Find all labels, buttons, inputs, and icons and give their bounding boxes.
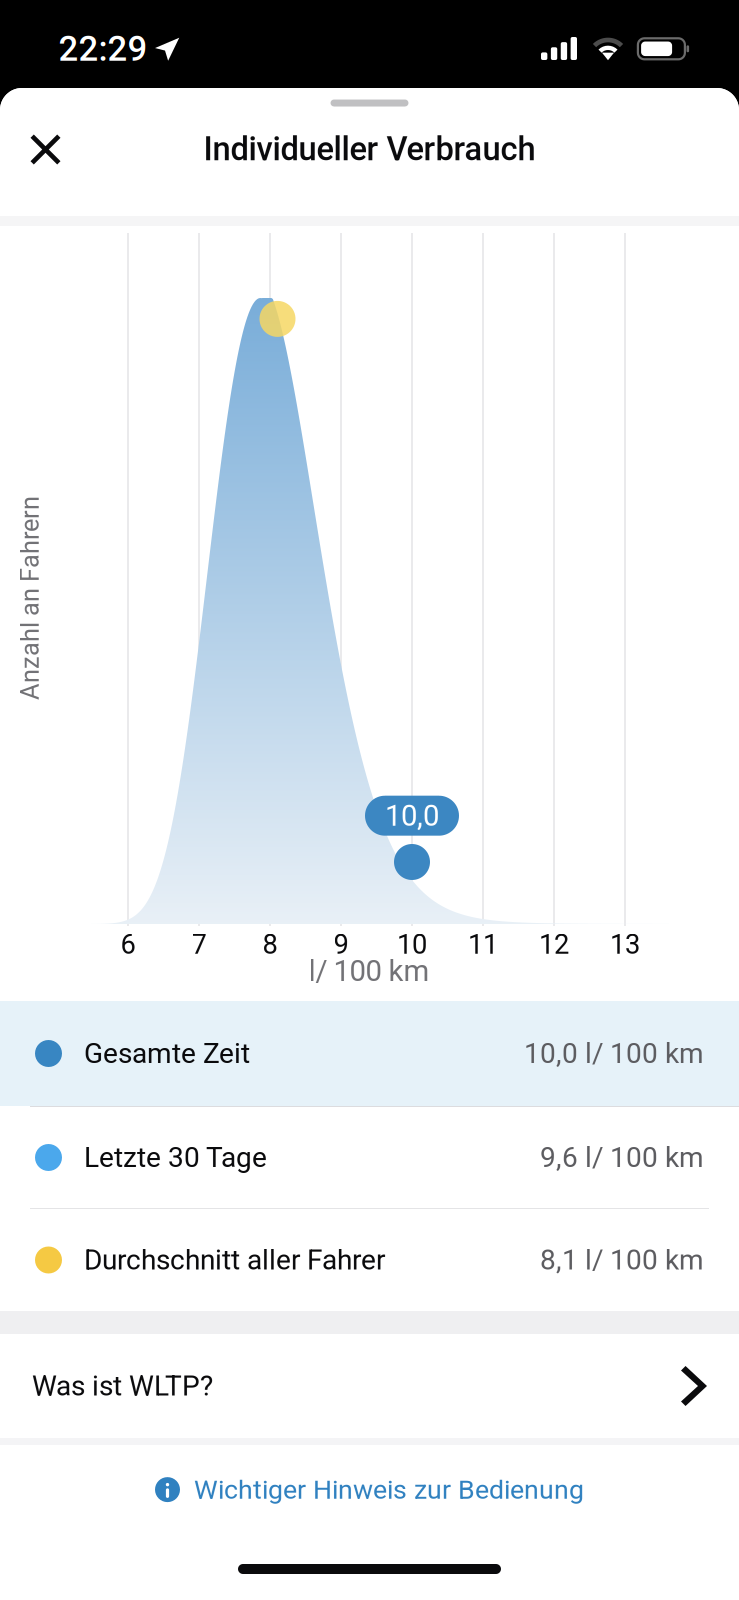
staticText: Anzahl an Fahrern [0,583,132,613]
staticText: Was ist WLTP? [32,1370,213,1402]
staticText: 8 [262,928,277,960]
staticText: 10,0 [385,798,439,833]
button[interactable]: Letzte 30 Tage [0,1107,739,1208]
staticText: 11 [468,928,498,960]
button[interactable]: Was ist WLTP? [0,1334,739,1438]
staticText: 7 [191,928,206,960]
staticText: 13 [610,928,640,960]
staticText: 9 [333,928,348,960]
staticText: 6 [120,928,135,960]
staticText: 10,0 l/ 100 km [524,1037,704,1070]
staticText: Gesamte Zeit [84,1037,250,1070]
staticText: 9,6 l/ 100 km [540,1141,704,1174]
button[interactable]: Gesamte Zeit [0,1001,739,1106]
staticText: 12 [539,928,569,960]
staticText: Individueller Verbrauch [203,130,535,168]
staticText: 8,1 l/ 100 km [540,1244,704,1276]
staticText: Letzte 30 Tage [84,1141,267,1174]
staticText: 10 [397,928,427,960]
button[interactable]: Durchschnitt aller Fahrer [0,1209,739,1311]
staticText: l/ 100 km [308,954,429,988]
staticText: Durchschnitt aller Fahrer [84,1244,385,1276]
staticText: Wichtiger Hinweis zur Bedienung [194,1474,584,1505]
staticText: 22:29 [58,29,147,69]
button[interactable]: Schließen [8,112,82,186]
button[interactable]: Wichtiger Hinweis zur Bedienung [0,1445,739,1534]
